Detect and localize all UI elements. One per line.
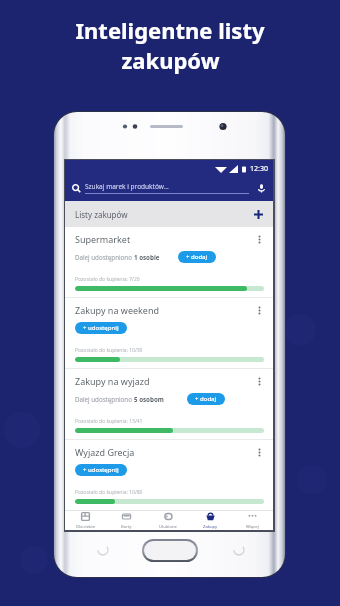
staticText: Więcej	[246, 524, 259, 530]
staticText: zakupów	[121, 45, 220, 75]
staticText: Inteligentne listy	[75, 15, 265, 45]
button[interactable]: Więcej	[231, 511, 273, 530]
button[interactable]: + udostępnij	[75, 322, 127, 334]
other: Dodaj listę	[253, 209, 264, 220]
button[interactable]: Zakupy na weekend	[65, 298, 273, 368]
staticText: Dalej udostępniono	[75, 253, 134, 261]
staticText: Karty	[121, 524, 132, 530]
staticText: 12:30	[250, 164, 268, 174]
staticText: Ulubione	[159, 524, 177, 530]
button[interactable]: Zakupy	[189, 511, 231, 530]
staticText: Zakupy na weekend	[75, 304, 160, 316]
button[interactable]: Listy zakupów	[65, 201, 273, 227]
button[interactable]: Ulubione	[147, 511, 189, 530]
staticText: Listy zakupów	[75, 209, 128, 220]
other: Więcej opcji	[255, 306, 264, 315]
staticText: 1 osobie	[134, 253, 160, 261]
staticText: Wyjazd Grecja	[75, 446, 135, 458]
staticText: Szukaj marek i produktów...	[85, 182, 169, 191]
other: Więcej opcji	[255, 448, 264, 457]
button[interactable]: + dodaj	[187, 393, 225, 405]
staticText: + dodaj	[186, 253, 208, 261]
staticText: Supermarket	[75, 233, 131, 245]
staticText: Pozostało do kupienia: 10/30	[75, 347, 143, 354]
staticText: Pozostało do kupienia: 10/80	[75, 489, 143, 496]
button[interactable]: + dodaj	[178, 251, 216, 263]
staticText: + udostępnij	[83, 324, 119, 332]
button[interactable]: + udostępnij	[75, 464, 127, 476]
button[interactable]: Zakupy na wyjazd	[65, 369, 273, 439]
staticText: Pozostało do kupienia: 13/41	[75, 418, 143, 425]
other: Więcej opcji	[255, 377, 264, 386]
staticText: Zakupy na wyjazd	[75, 375, 150, 387]
staticText: + dodaj	[195, 395, 217, 403]
button[interactable]: Supermarket	[65, 227, 273, 297]
other: Więcej opcji	[255, 235, 264, 244]
staticText: Zakupy	[203, 524, 218, 530]
staticText: 5 osobom	[134, 395, 164, 403]
staticText: Dla ciebie	[76, 524, 96, 530]
staticText: + udostępnij	[83, 466, 119, 474]
button[interactable]: Karty	[106, 511, 147, 530]
staticText: Dalej udostępniono	[75, 395, 134, 403]
button[interactable]: Dla ciebie	[65, 511, 106, 530]
button[interactable]: Szukaj marek i produktów...	[72, 182, 266, 194]
staticText: Pozostało do kupienia: 7/20	[75, 276, 140, 283]
button[interactable]: Wyjazd Grecja	[65, 440, 273, 510]
other: Wyszukiwanie głosowe	[257, 184, 266, 193]
